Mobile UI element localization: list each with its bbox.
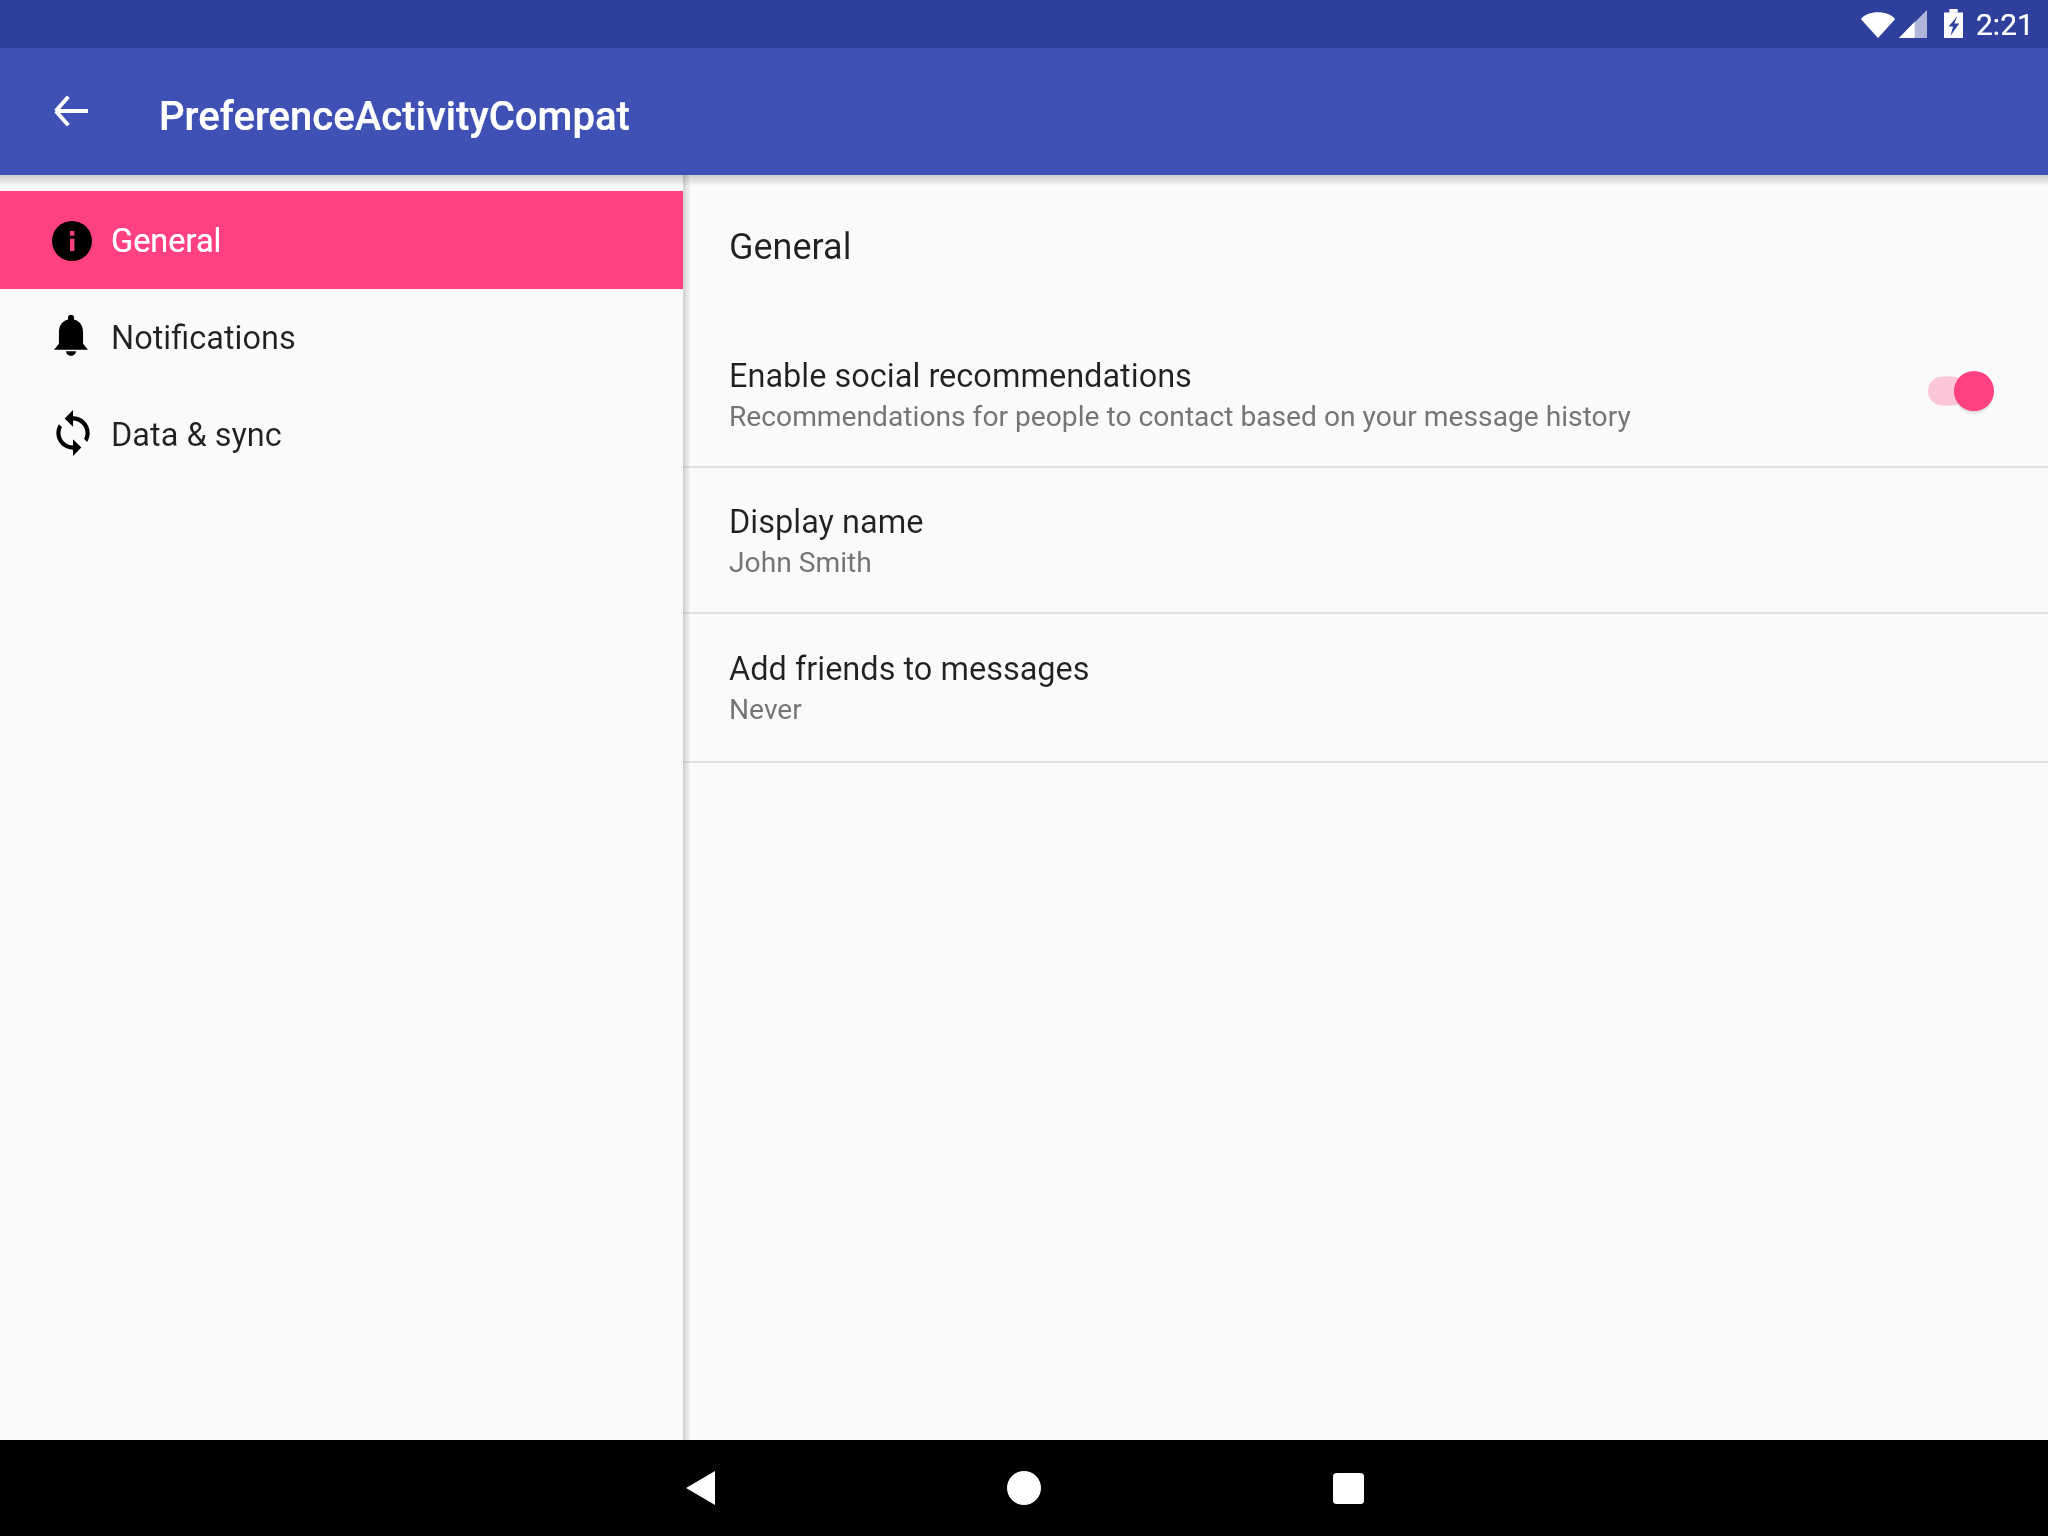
staticText: Notifications <box>111 319 296 357</box>
staticText: Enable social recommendations <box>729 357 1192 395</box>
button[interactable]: Navigate up <box>31 71 111 151</box>
button[interactable]: Add friends to messages <box>683 612 2048 761</box>
staticText: Never <box>729 693 802 726</box>
button[interactable]: Recent apps <box>1308 1448 1388 1528</box>
button[interactable]: Enable social recommendations <box>1928 371 1994 411</box>
button[interactable]: General <box>0 191 683 289</box>
button[interactable]: Home <box>984 1448 1064 1528</box>
button[interactable]: Data & sync <box>0 385 683 483</box>
button[interactable]: Enable social recommendations <box>683 320 2048 466</box>
button[interactable]: Notifications <box>0 288 683 386</box>
staticText: John Smith <box>729 546 872 579</box>
staticText: General <box>729 226 852 268</box>
staticText: Add friends to messages <box>729 650 1090 688</box>
staticText: Display name <box>729 503 924 541</box>
button[interactable]: Back <box>660 1448 740 1528</box>
staticText: PreferenceActivityCompat <box>159 93 630 140</box>
staticText: 2:21 <box>1976 7 2034 42</box>
staticText: Recommendations for people to contact ba… <box>729 400 1631 433</box>
staticText: Data & sync <box>111 416 282 454</box>
button[interactable]: Display name <box>683 466 2048 612</box>
staticText: General <box>111 222 222 260</box>
